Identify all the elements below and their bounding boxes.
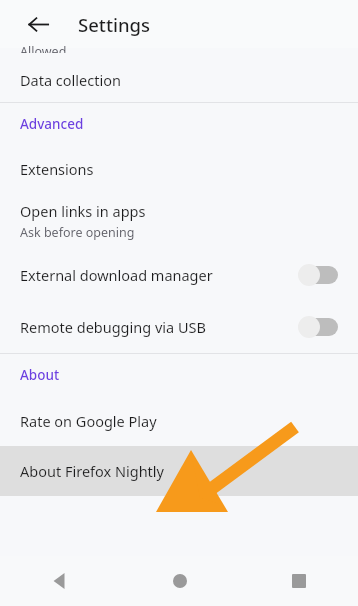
- staticText: Allowed: [20, 43, 67, 53]
- button[interactable]: Home: [120, 556, 239, 606]
- button[interactable]: Open links in apps: [0, 193, 358, 249]
- button[interactable]: Remote debugging via USB: [0, 301, 358, 353]
- button[interactable]: Recent apps: [239, 556, 358, 606]
- button[interactable]: Back: [20, 6, 56, 42]
- button[interactable]: Data collection: [0, 58, 358, 102]
- button[interactable]: External download manager: [0, 249, 358, 301]
- button[interactable]: Allowed: [0, 48, 358, 58]
- staticText: Extensions: [20, 159, 94, 179]
- button[interactable]: Rate on Google Play: [0, 396, 358, 446]
- staticText: About Firefox Nightly: [20, 461, 164, 481]
- staticText: Advanced: [20, 115, 84, 133]
- staticText: Ask before opening: [20, 224, 135, 241]
- staticText: About: [20, 366, 60, 384]
- staticText: Remote debugging via USB: [20, 317, 206, 337]
- staticText: Data collection: [20, 70, 121, 90]
- staticText: External download manager: [20, 265, 213, 285]
- staticText: Settings: [78, 12, 151, 37]
- button[interactable]: Back: [0, 556, 120, 606]
- button[interactable]: About Firefox Nightly: [0, 446, 358, 496]
- button[interactable]: Extensions: [0, 145, 358, 193]
- staticText: Open links in apps: [20, 201, 146, 221]
- staticText: Rate on Google Play: [20, 411, 157, 431]
